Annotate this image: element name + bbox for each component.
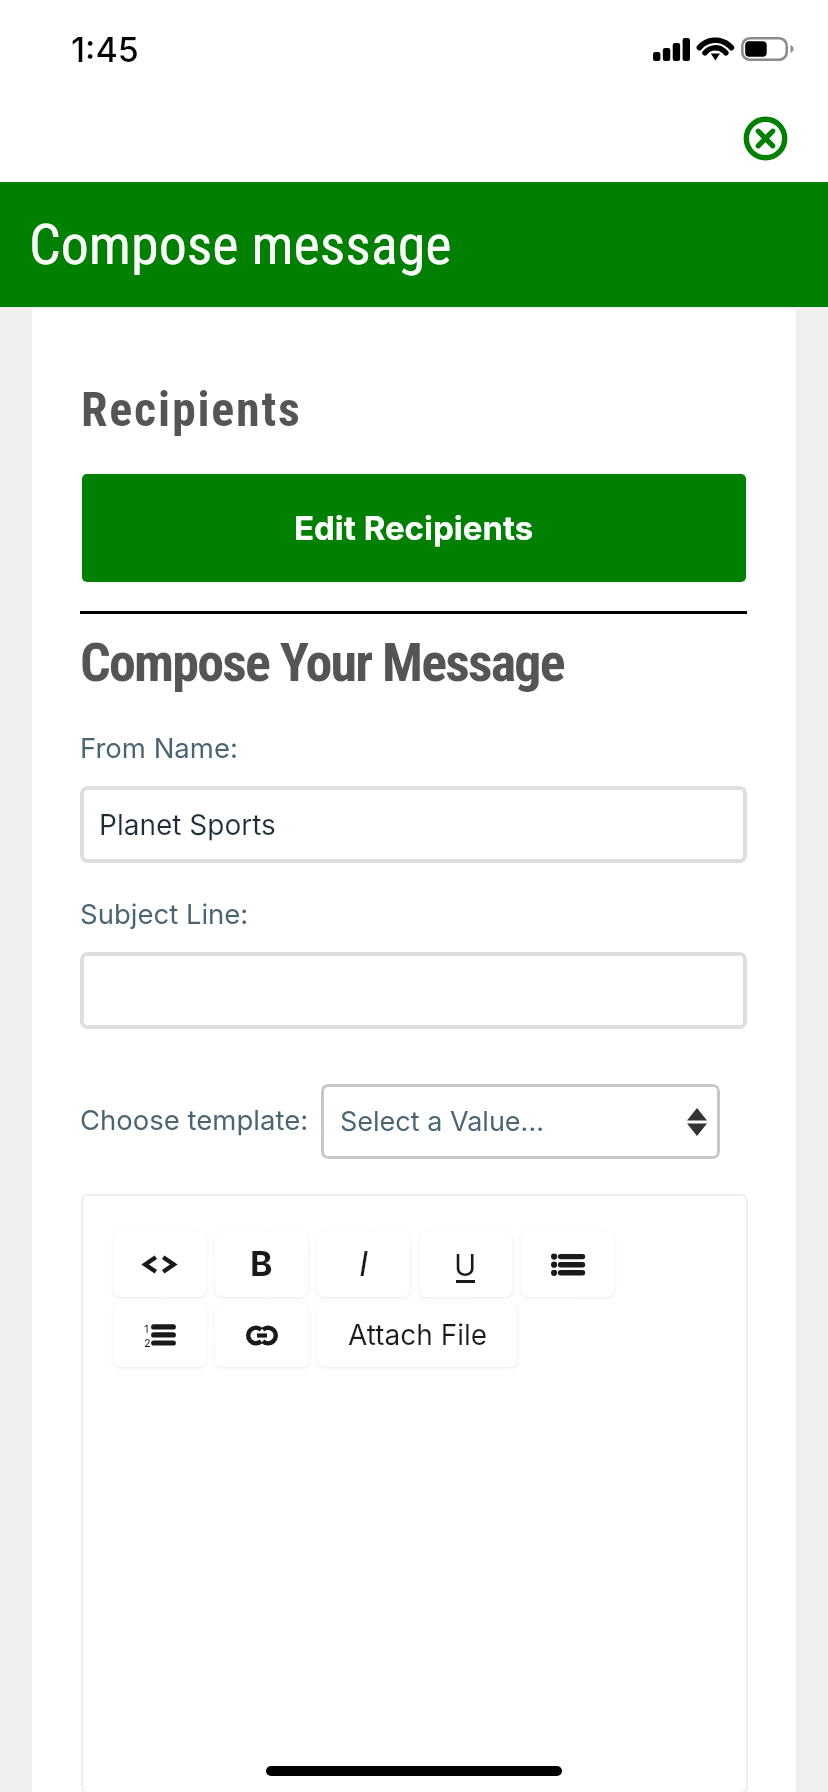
button[interactable]: Insert link xyxy=(215,1303,309,1367)
staticText: I xyxy=(359,1243,369,1284)
staticText: Edit Recipients xyxy=(294,508,534,548)
staticText: From Name: xyxy=(80,731,238,764)
button[interactable]: Edit Recipients xyxy=(82,474,746,582)
button[interactable]: Close xyxy=(741,114,790,163)
button[interactable]: Bullet list xyxy=(521,1231,614,1297)
staticText: B xyxy=(250,1243,273,1284)
staticText: Subject Line: xyxy=(80,897,249,930)
staticText: Recipients xyxy=(81,381,302,437)
staticText: Attach File xyxy=(348,1318,488,1352)
staticText: 1:45 xyxy=(71,29,139,70)
button[interactable]: Underline xyxy=(419,1231,512,1297)
button[interactable]: Numbered list xyxy=(113,1303,206,1367)
button[interactable]: Attach File xyxy=(318,1303,517,1367)
button[interactable]: Select a Value... xyxy=(321,1084,720,1159)
staticText: Planet Sports xyxy=(99,808,276,842)
button[interactable]: Italic xyxy=(317,1231,410,1297)
button[interactable]: Code xyxy=(113,1231,206,1297)
staticText: 2 xyxy=(144,1336,151,1349)
staticText: 1 xyxy=(144,1322,149,1335)
staticText: U xyxy=(454,1247,477,1283)
button[interactable]: Bold xyxy=(215,1231,308,1297)
button[interactable] xyxy=(80,952,747,1029)
staticText: Compose Your Message xyxy=(80,631,564,694)
button[interactable]: Planet Sports xyxy=(80,786,747,863)
staticText: Choose template: xyxy=(80,1103,309,1136)
staticText: Compose message xyxy=(29,212,452,278)
staticText: Select a Value... xyxy=(340,1105,544,1138)
